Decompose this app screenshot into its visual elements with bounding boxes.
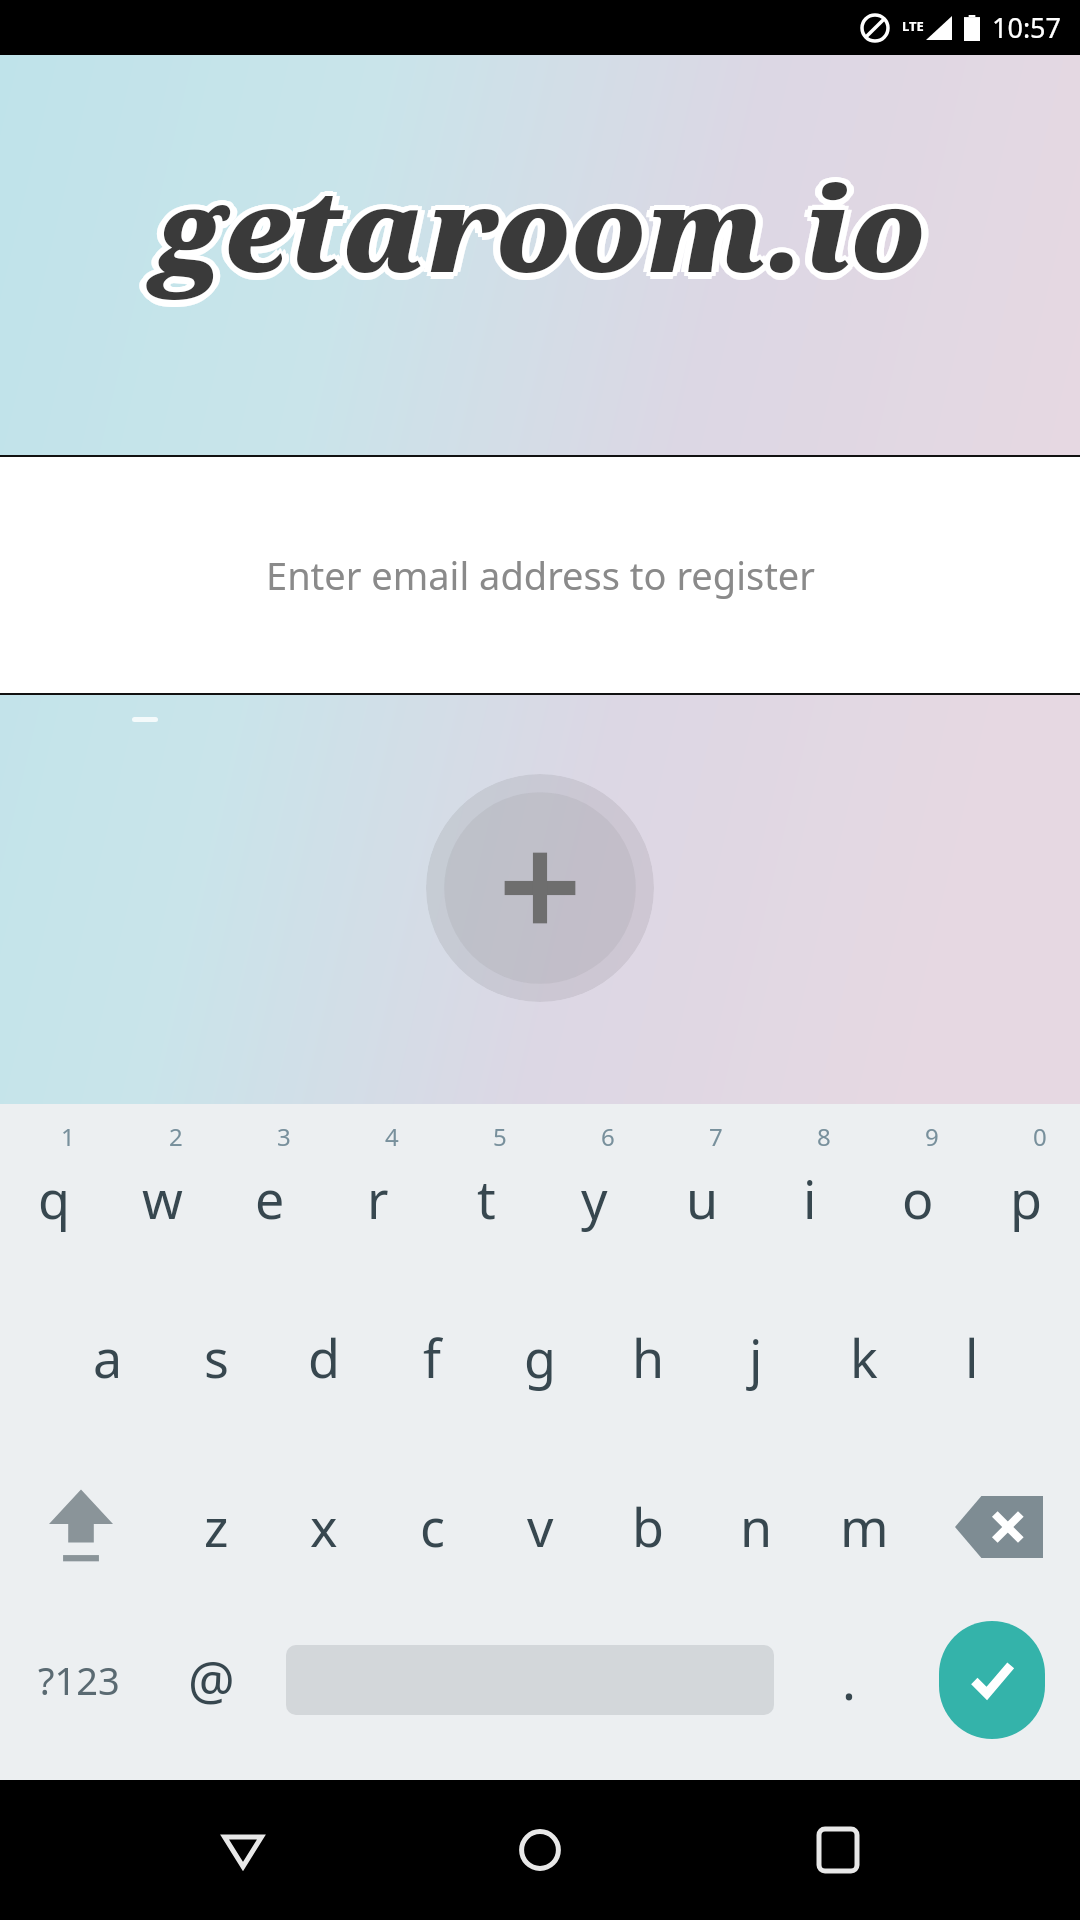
staticText: a — [93, 1322, 123, 1393]
button[interactable]: Space — [265, 1611, 795, 1780]
button[interactable]: l — [918, 1273, 1026, 1442]
staticText: LTE — [902, 17, 924, 35]
staticText: 0 — [1033, 1120, 1047, 1153]
staticText: d — [308, 1322, 340, 1393]
button[interactable]: 8 — [756, 1104, 864, 1273]
staticText: g — [524, 1322, 556, 1393]
staticText: getaroom.io — [155, 143, 926, 301]
button[interactable]: m — [810, 1442, 918, 1611]
staticText: v — [527, 1491, 554, 1562]
button[interactable]: a — [54, 1273, 162, 1442]
staticText: c — [420, 1491, 445, 1562]
button[interactable]: ?123 — [0, 1611, 157, 1780]
button[interactable]: k — [810, 1273, 918, 1442]
staticText: getaroom.io — [160, 148, 931, 306]
staticText: 2 — [169, 1120, 183, 1153]
staticText: 4 — [385, 1120, 399, 1153]
staticText: getaroom.io — [148, 148, 919, 306]
staticText: l — [965, 1322, 979, 1393]
button[interactable]: Enter — [903, 1611, 1080, 1780]
staticText: 8 — [817, 1120, 831, 1153]
staticText: f — [423, 1322, 441, 1393]
staticText: 6 — [601, 1120, 615, 1153]
staticText: ?123 — [38, 1654, 120, 1706]
staticText: u — [686, 1163, 719, 1234]
staticText: x — [310, 1491, 338, 1562]
staticText: getaroom.io — [159, 152, 930, 310]
button[interactable]: 2 — [108, 1104, 216, 1273]
button[interactable]: s — [162, 1273, 270, 1442]
staticText: 9 — [925, 1120, 939, 1153]
staticText: getaroom.io — [151, 144, 922, 302]
button[interactable]: Backspace — [918, 1442, 1080, 1611]
staticText: s — [204, 1322, 229, 1393]
button[interactable]: 0 — [972, 1104, 1080, 1273]
button[interactable]: f — [378, 1273, 486, 1442]
staticText: getaroom.io — [151, 152, 922, 310]
staticText: @ — [188, 1644, 235, 1715]
staticText: 7 — [709, 1120, 723, 1153]
button[interactable]: v — [486, 1442, 594, 1611]
staticText: h — [632, 1322, 665, 1393]
button[interactable]: Home — [485, 1795, 595, 1905]
staticText: 1 — [61, 1120, 75, 1153]
button[interactable]: @ — [157, 1611, 265, 1780]
staticText: m — [840, 1491, 889, 1562]
staticText: t — [477, 1163, 496, 1234]
staticText: getaroom.io — [155, 148, 926, 306]
staticText: k — [850, 1322, 878, 1393]
staticText: getaroom.io — [155, 155, 926, 313]
staticText: 10:57 — [992, 9, 1062, 46]
staticText: getaroom.io — [162, 148, 933, 306]
button[interactable]: g — [486, 1273, 594, 1442]
staticText: . — [842, 1644, 856, 1715]
staticText: getaroom.io — [150, 148, 921, 306]
staticText: q — [38, 1163, 70, 1234]
staticText: b — [632, 1491, 664, 1562]
button[interactable]: h — [594, 1273, 702, 1442]
button[interactable]: Back — [188, 1795, 298, 1905]
staticText: w — [142, 1163, 183, 1234]
button[interactable]: j — [702, 1273, 810, 1442]
button[interactable]: Shift — [0, 1442, 162, 1611]
staticText: n — [740, 1491, 773, 1562]
button[interactable]: Add — [426, 774, 654, 1002]
button[interactable]: d — [270, 1273, 378, 1442]
staticText: Enter email address to register — [266, 549, 815, 601]
staticText: i — [803, 1163, 817, 1234]
staticText: j — [749, 1322, 763, 1393]
button[interactable]: 4 — [324, 1104, 432, 1273]
button[interactable]: Recents — [783, 1795, 893, 1905]
staticText: p — [1010, 1163, 1042, 1234]
staticText: z — [204, 1491, 229, 1562]
button[interactable]: 9 — [864, 1104, 972, 1273]
button[interactable]: c — [378, 1442, 486, 1611]
button[interactable]: 7 — [648, 1104, 756, 1273]
button[interactable]: z — [162, 1442, 270, 1611]
button[interactable]: 6 — [540, 1104, 648, 1273]
staticText: getaroom.io — [159, 144, 930, 302]
button[interactable]: . — [795, 1611, 903, 1780]
staticText: e — [255, 1163, 285, 1234]
staticText: o — [902, 1163, 934, 1234]
staticText: r — [367, 1163, 389, 1234]
button[interactable]: b — [594, 1442, 702, 1611]
button[interactable]: 1 — [0, 1104, 108, 1273]
staticText: getaroom.io — [155, 153, 926, 311]
staticText: y — [581, 1163, 608, 1234]
button[interactable]: 5 — [432, 1104, 540, 1273]
button[interactable]: x — [270, 1442, 378, 1611]
button[interactable]: 3 — [216, 1104, 324, 1273]
staticText: 3 — [277, 1120, 291, 1153]
staticText: 5 — [493, 1120, 507, 1153]
button[interactable]: Enter email address to register — [0, 455, 1080, 695]
button[interactable]: n — [702, 1442, 810, 1611]
